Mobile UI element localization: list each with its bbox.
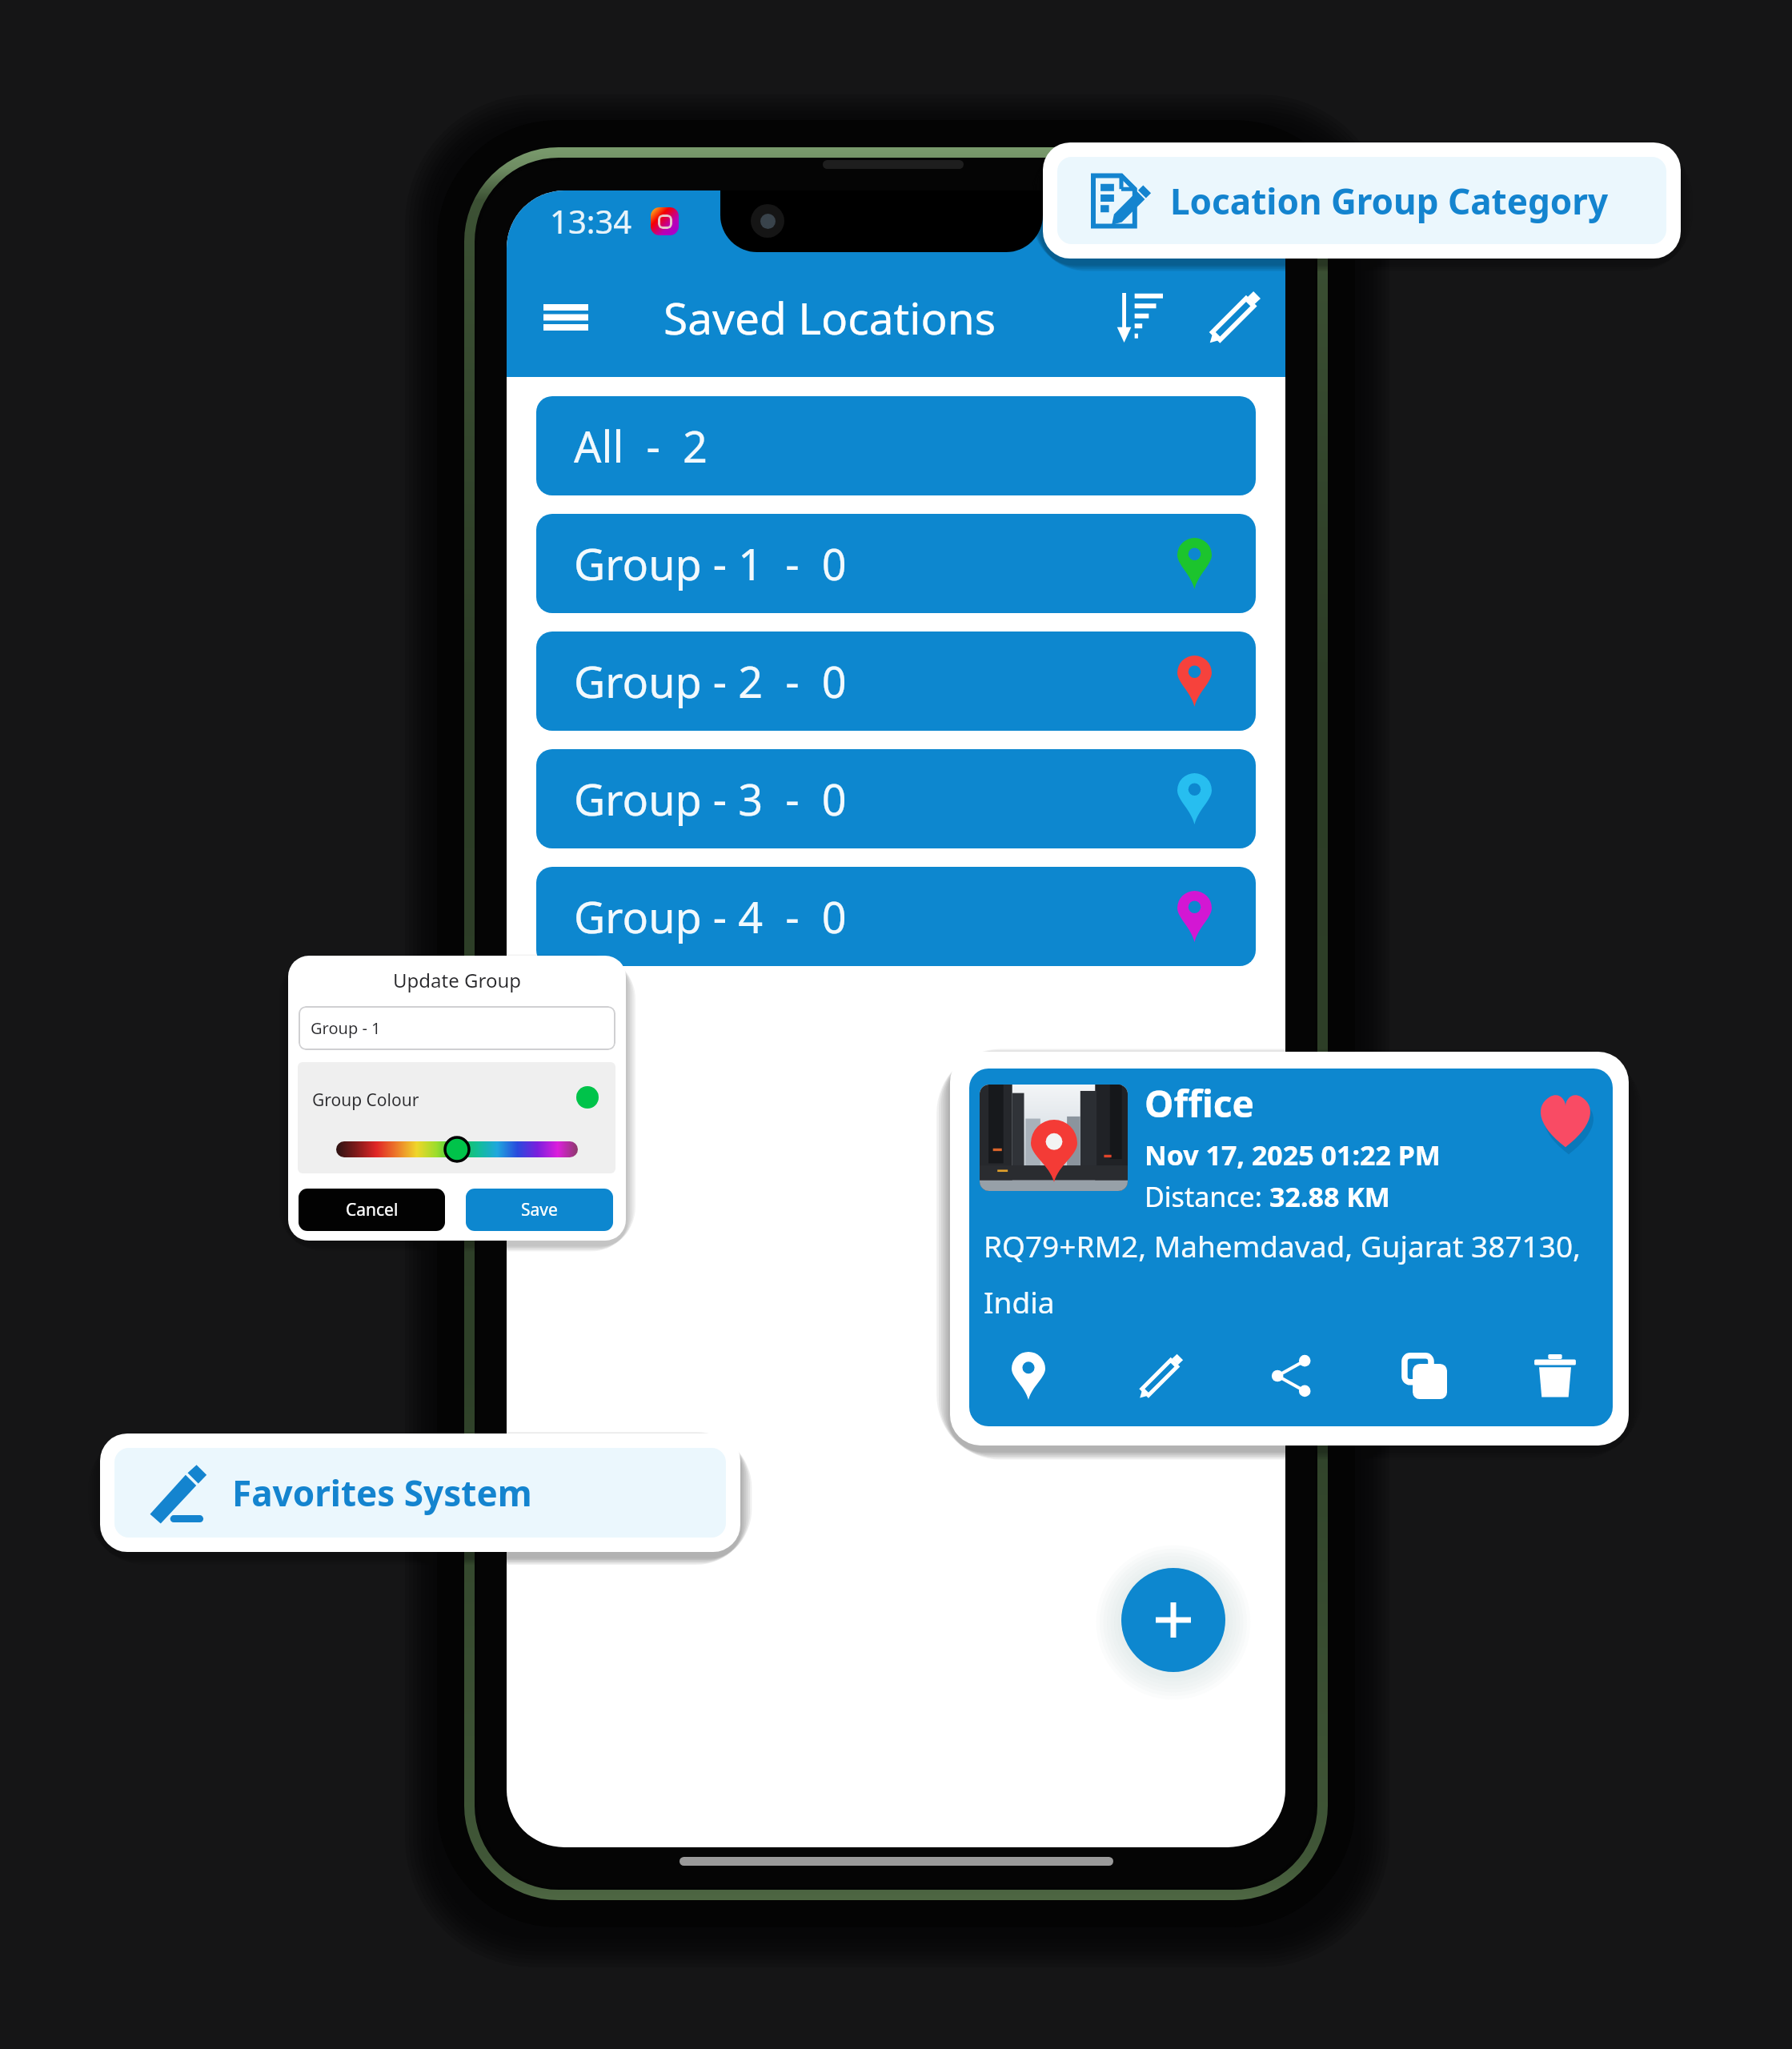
staticText: RQ79+RM2, Mahemdavad, Gujarat 387130, In… <box>984 1225 1608 1322</box>
staticText: Save <box>521 1198 558 1221</box>
staticText: Distance: <box>1145 1178 1269 1215</box>
button[interactable]: Sort <box>1101 279 1178 355</box>
button[interactable]: Group - 4 - 0 <box>536 867 1256 966</box>
button[interactable]: Save <box>466 1189 613 1231</box>
staticText: Location Group Category <box>1170 177 1609 225</box>
button[interactable]: Favorites System <box>114 1448 726 1538</box>
button[interactable]: Open map <box>1002 1349 1055 1402</box>
staticText: Group - 1 - 0 <box>574 534 847 593</box>
button[interactable]: All - 2 <box>536 396 1256 495</box>
button[interactable]: Edit <box>1196 279 1273 355</box>
staticText: Cancel <box>346 1198 399 1221</box>
staticText: Nov 17, 2025 01:22 PM <box>1145 1137 1441 1173</box>
button[interactable]: Group - 3 - 0 <box>536 749 1256 848</box>
staticText: 13:34 <box>550 199 632 243</box>
staticText: Group - 3 - 0 <box>574 769 847 828</box>
button[interactable]: Cancel <box>299 1189 445 1231</box>
button[interactable]: Location Group Category <box>1057 157 1666 244</box>
staticText: Group - 4 - 0 <box>574 887 847 946</box>
button[interactable]: Delete <box>1529 1349 1582 1402</box>
staticText: Group - 1 <box>311 1017 381 1039</box>
button[interactable]: Share <box>1265 1349 1318 1402</box>
staticText: Group - 2 - 0 <box>574 652 847 711</box>
button[interactable]: Office <box>969 1069 1613 1426</box>
staticText: Saved Locations <box>663 287 996 347</box>
button[interactable]: Group - 2 - 0 <box>536 632 1256 731</box>
staticText: All - 2 <box>574 416 708 475</box>
button[interactable]: Menu <box>530 281 602 353</box>
staticText: Update Group <box>288 967 626 993</box>
staticText: Group Colour <box>312 1089 419 1112</box>
button[interactable]: Favorite <box>1529 1085 1602 1157</box>
button[interactable]: Copy <box>1397 1349 1450 1402</box>
staticText: 32.88 KM <box>1269 1178 1390 1215</box>
button[interactable]: Add location <box>1121 1568 1225 1672</box>
staticText: Office <box>1145 1078 1254 1129</box>
button[interactable]: Edit <box>1134 1349 1187 1402</box>
staticText: Favorites System <box>232 1469 532 1517</box>
button[interactable]: Group - 1 - 0 <box>536 514 1256 613</box>
